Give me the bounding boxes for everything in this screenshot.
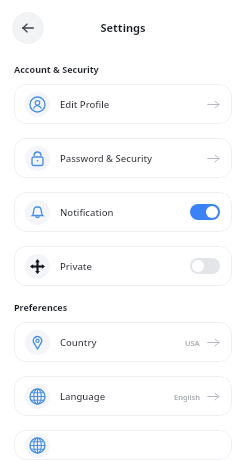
button[interactable]: Private <box>14 246 232 286</box>
button[interactable] <box>14 430 232 460</box>
staticText: Preferences <box>14 301 68 313</box>
button[interactable]: Toggle on <box>190 204 220 220</box>
button[interactable]: Country <box>14 322 232 362</box>
staticText: Password & Security <box>60 152 153 165</box>
staticText: USA <box>185 338 200 348</box>
other: Open <box>207 98 220 111</box>
staticText: Edit Profile <box>60 98 110 111</box>
other: Open <box>207 336 220 349</box>
staticText: Notification <box>60 206 114 219</box>
staticText: Account & Security <box>14 63 99 75</box>
button[interactable]: Language <box>14 376 232 416</box>
button[interactable]: Back <box>12 12 44 44</box>
button[interactable]: Edit Profile <box>14 84 232 124</box>
button[interactable]: Password & Security <box>14 138 232 178</box>
button[interactable]: Toggle off <box>190 258 220 274</box>
staticText: English <box>174 392 200 402</box>
button[interactable]: Notification <box>14 192 232 232</box>
other: Open <box>207 390 220 403</box>
staticText: Private <box>60 260 92 273</box>
staticText: Language <box>60 390 106 403</box>
staticText: Country <box>60 336 97 349</box>
staticText: Settings <box>100 20 146 35</box>
other: Open <box>207 152 220 165</box>
